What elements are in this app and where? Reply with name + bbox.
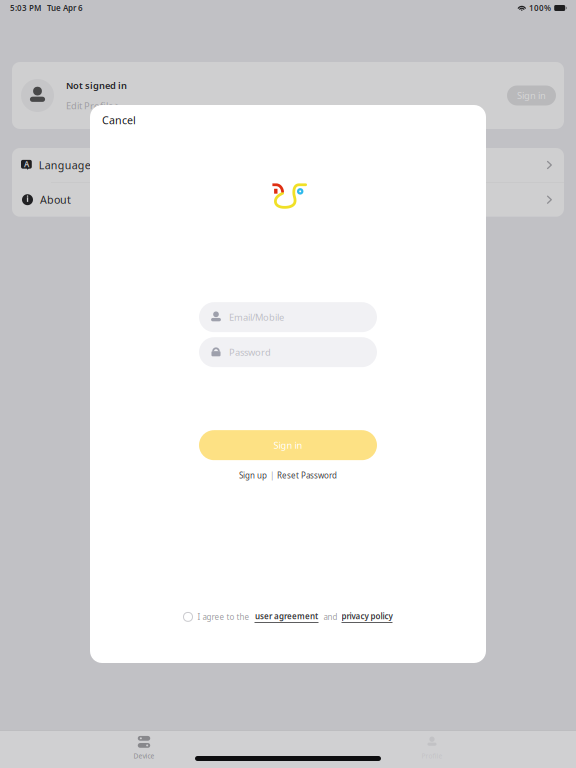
staticText: Edit Profile > bbox=[66, 99, 120, 112]
staticText: Cancel bbox=[102, 113, 136, 127]
staticText: Password bbox=[229, 346, 271, 358]
staticText: Reset Password bbox=[277, 470, 337, 481]
staticText: Profile bbox=[421, 751, 442, 760]
button[interactable]: Reset Password bbox=[277, 470, 337, 481]
staticText: Device bbox=[133, 751, 154, 760]
staticText: I agree to the bbox=[197, 612, 249, 622]
staticText: | bbox=[270, 470, 274, 481]
button[interactable]: Cancel bbox=[96, 108, 142, 132]
staticText: Tue Apr 6 bbox=[47, 3, 83, 13]
staticText: A bbox=[24, 159, 29, 169]
button[interactable]: About bbox=[12, 183, 564, 217]
staticText: privacy policy bbox=[341, 611, 392, 621]
staticText: About bbox=[40, 193, 71, 207]
button[interactable]: privacy policy bbox=[337, 611, 392, 623]
button[interactable]: Sign in bbox=[507, 85, 556, 105]
staticText: and bbox=[323, 612, 337, 622]
button[interactable]: user agreement bbox=[249, 611, 319, 623]
button[interactable]: Agree to terms and privacy policy bbox=[183, 612, 192, 621]
staticText: Email/Mobile bbox=[229, 311, 284, 323]
staticText: Sign in bbox=[273, 439, 302, 451]
staticText: 5:03 PM bbox=[10, 3, 41, 13]
button[interactable]: Sign in bbox=[199, 430, 377, 460]
staticText: Language Settings bbox=[39, 158, 136, 172]
staticText: Sign in bbox=[517, 89, 546, 102]
staticText: 100% bbox=[529, 3, 551, 13]
staticText: Sign up bbox=[239, 470, 267, 481]
staticText: Not signed in bbox=[66, 79, 127, 91]
button[interactable]: A bbox=[12, 148, 564, 182]
button[interactable]: Sign up bbox=[239, 470, 267, 481]
button[interactable]: Profile bbox=[288, 731, 576, 768]
staticText: user agreement bbox=[255, 611, 318, 621]
button[interactable]: Device bbox=[0, 731, 288, 768]
